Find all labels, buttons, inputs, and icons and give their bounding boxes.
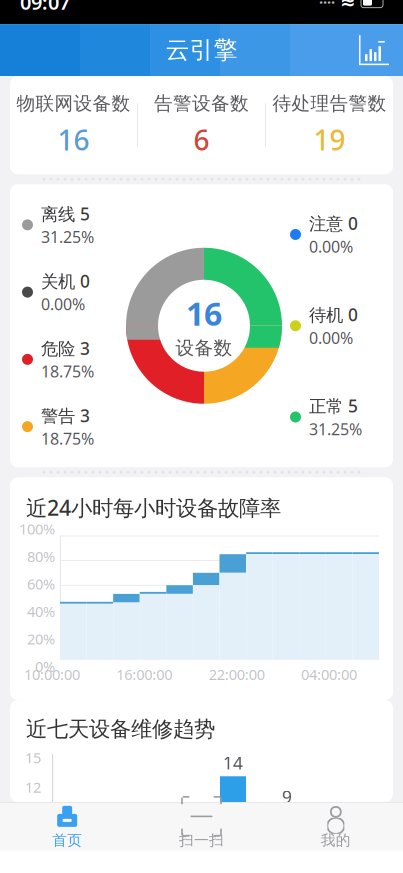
staticText: 近七天设备维修趋势 [26,716,215,742]
staticText: 告警设备数 [154,92,249,115]
staticText: 80% [27,547,55,566]
staticText: 正常 5 [309,394,358,417]
staticText: 警告 3 [41,404,90,427]
staticText: 14 [223,751,243,774]
staticText: 18.75% [41,428,94,449]
staticText: 16 [57,121,89,158]
staticText: 待机 0 [309,303,358,326]
staticText: ···· [319,0,335,12]
button[interactable]: 物联网设备数 [10,80,137,170]
staticText: 100% [19,519,55,539]
staticText: 12 [25,777,41,797]
staticText: 0% [35,657,55,676]
staticText: 关机 0 [41,269,90,292]
staticText: 04:00:00 [301,665,357,684]
staticText: 0.00% [41,293,85,315]
staticText: 危险 3 [41,337,90,360]
staticText: 设备数 [175,336,232,359]
staticText: 31.25% [309,418,362,440]
staticText: 注意 0 [309,212,358,235]
staticText: 9 [282,785,292,808]
staticText: 云引擎 [165,35,237,65]
staticText: 09:07 [20,0,70,15]
button[interactable]: 待处理告警数 [266,80,393,170]
staticText: 20% [27,629,55,649]
staticText: 10:00:00 [24,665,80,684]
button[interactable]: 告警设备数 [138,80,265,170]
staticText: 22:00:00 [209,665,265,684]
staticText: 我的 [321,831,351,849]
staticText: 待处理告警数 [272,92,386,115]
staticText: 首页 [52,831,82,849]
staticText: 18.75% [41,361,94,382]
staticText: 31.25% [41,226,94,247]
staticText: 近24小时每小时设备故障率 [26,493,281,522]
button[interactable]: Analytics [359,35,403,65]
staticText: 40% [27,602,55,621]
staticText: 16:00:00 [116,665,172,684]
staticText: 60% [27,574,55,594]
button[interactable]: 扫一扫 [134,798,269,855]
staticText: 0.00% [309,236,353,257]
staticText: 6 [193,121,209,158]
staticText: 19 [313,121,345,158]
staticText: 0.00% [309,327,353,348]
staticText: 16 [186,292,222,334]
staticText: ≈ [340,0,356,13]
button[interactable]: 首页 [0,798,134,855]
staticText: 物联网设备数 [16,92,130,115]
staticText: 扫一扫 [179,831,224,849]
staticText: 15 [25,748,41,767]
staticText: 离线 5 [41,202,90,225]
button[interactable]: 我的 [269,798,403,855]
